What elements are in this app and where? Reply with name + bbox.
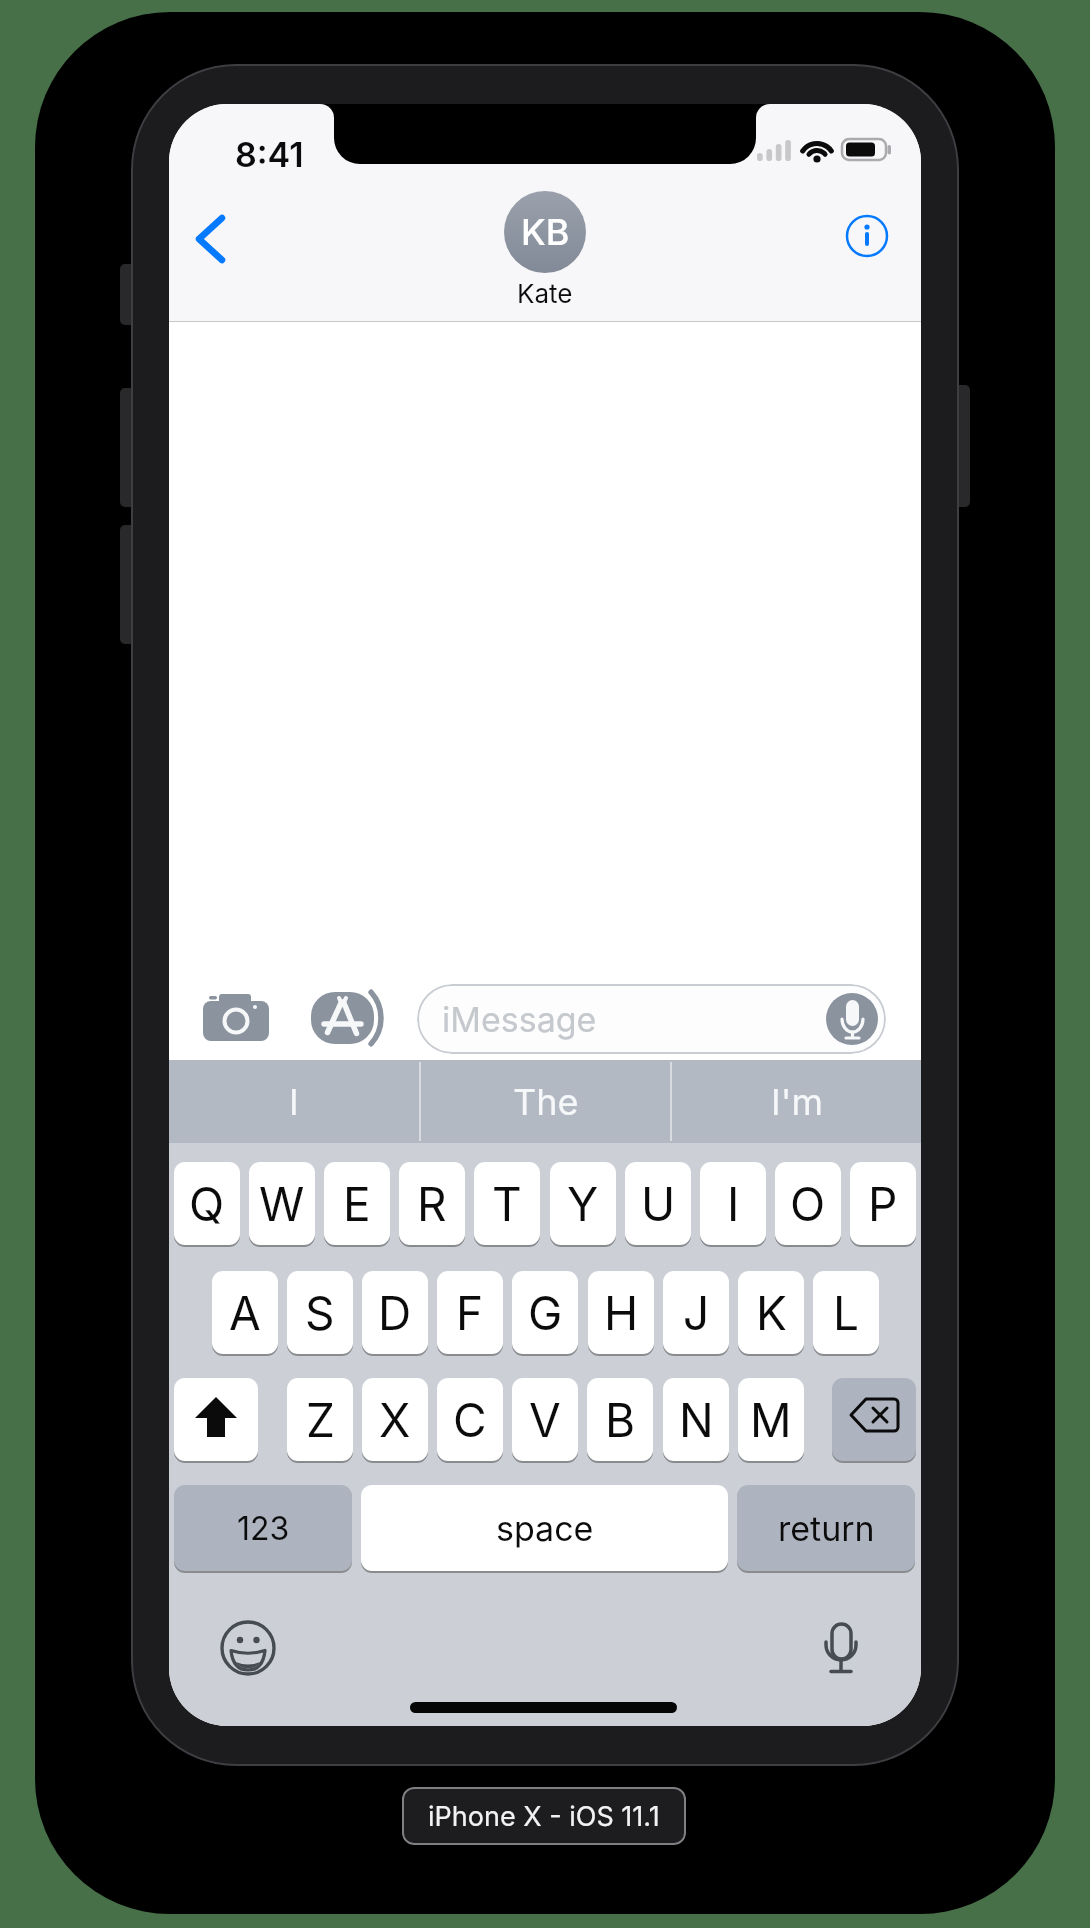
staticText: KB bbox=[521, 210, 570, 254]
button[interactable]: R bbox=[399, 1162, 465, 1245]
staticText: P bbox=[868, 1176, 898, 1232]
staticText: iMessage bbox=[442, 999, 597, 1040]
staticText: 123 bbox=[237, 1509, 290, 1548]
button[interactable] bbox=[832, 1378, 916, 1461]
button[interactable]: Y bbox=[550, 1162, 616, 1245]
button[interactable] bbox=[839, 208, 895, 264]
staticText: I bbox=[727, 1176, 740, 1232]
button[interactable]: N bbox=[663, 1378, 729, 1461]
staticText: A bbox=[229, 1285, 261, 1341]
button[interactable]: V bbox=[512, 1378, 578, 1461]
button[interactable]: J bbox=[663, 1271, 729, 1354]
button[interactable]: I bbox=[169, 1060, 419, 1143]
staticText: U bbox=[641, 1176, 676, 1232]
button[interactable]: I bbox=[700, 1162, 766, 1245]
button[interactable] bbox=[174, 1378, 258, 1461]
button[interactable]: return bbox=[737, 1485, 915, 1571]
staticText: F bbox=[456, 1285, 484, 1341]
button[interactable]: space bbox=[361, 1485, 728, 1571]
staticText: S bbox=[305, 1285, 335, 1341]
button[interactable]: A bbox=[212, 1271, 278, 1354]
button[interactable] bbox=[216, 1616, 280, 1680]
staticText: iPhone X - iOS 11.1 bbox=[428, 1800, 660, 1833]
staticText: L bbox=[833, 1285, 860, 1341]
staticText: I'm bbox=[771, 1080, 823, 1124]
staticText: H bbox=[604, 1285, 639, 1341]
staticText: W bbox=[259, 1176, 305, 1232]
button[interactable]: The bbox=[421, 1060, 670, 1143]
staticText: Z bbox=[306, 1392, 335, 1448]
staticText: V bbox=[529, 1392, 561, 1448]
button[interactable]: H bbox=[588, 1271, 654, 1354]
staticText: return bbox=[778, 1508, 875, 1549]
staticText: K bbox=[756, 1285, 787, 1341]
button[interactable]: E bbox=[324, 1162, 390, 1245]
button[interactable]: U bbox=[625, 1162, 691, 1245]
staticText: M bbox=[750, 1392, 792, 1448]
staticText: Kate bbox=[517, 278, 573, 309]
button[interactable]: K bbox=[738, 1271, 804, 1354]
staticText: T bbox=[492, 1176, 522, 1232]
button[interactable]: Q bbox=[174, 1162, 240, 1245]
button[interactable]: L bbox=[813, 1271, 879, 1354]
staticText: Q bbox=[189, 1176, 225, 1232]
staticText: D bbox=[378, 1285, 412, 1341]
staticText: O bbox=[790, 1176, 826, 1232]
button[interactable]: W bbox=[249, 1162, 315, 1245]
button[interactable] bbox=[311, 992, 395, 1046]
staticText: N bbox=[679, 1392, 714, 1448]
button[interactable]: I'm bbox=[672, 1060, 921, 1143]
button[interactable]: X bbox=[362, 1378, 428, 1461]
staticText: E bbox=[343, 1176, 371, 1232]
staticText: X bbox=[379, 1392, 411, 1448]
button[interactable]: P bbox=[850, 1162, 916, 1245]
button[interactable]: O bbox=[775, 1162, 841, 1245]
staticText: R bbox=[417, 1176, 447, 1232]
button[interactable]: D bbox=[362, 1271, 428, 1354]
staticText: I bbox=[289, 1080, 299, 1124]
staticText: J bbox=[683, 1285, 710, 1341]
staticText: space bbox=[496, 1508, 594, 1549]
button[interactable]: Z bbox=[287, 1378, 353, 1461]
button[interactable] bbox=[805, 1612, 877, 1684]
staticText: C bbox=[453, 1392, 487, 1448]
button[interactable]: F bbox=[437, 1271, 503, 1354]
button[interactable] bbox=[199, 988, 273, 1052]
button[interactable]: G bbox=[512, 1271, 578, 1354]
button[interactable]: 123 bbox=[174, 1485, 352, 1571]
button[interactable] bbox=[179, 204, 239, 274]
button[interactable]: T bbox=[474, 1162, 540, 1245]
button[interactable]: M bbox=[738, 1378, 804, 1461]
staticText: Y bbox=[567, 1176, 599, 1232]
staticText: B bbox=[605, 1392, 636, 1448]
staticText: 8:41 bbox=[235, 134, 304, 172]
button[interactable]: iMessage bbox=[417, 984, 886, 1054]
staticText: G bbox=[528, 1285, 563, 1341]
button[interactable]: KB bbox=[504, 191, 586, 273]
staticText: The bbox=[513, 1080, 579, 1124]
button[interactable]: S bbox=[287, 1271, 353, 1354]
button[interactable]: C bbox=[437, 1378, 503, 1461]
button[interactable]: B bbox=[587, 1378, 653, 1461]
